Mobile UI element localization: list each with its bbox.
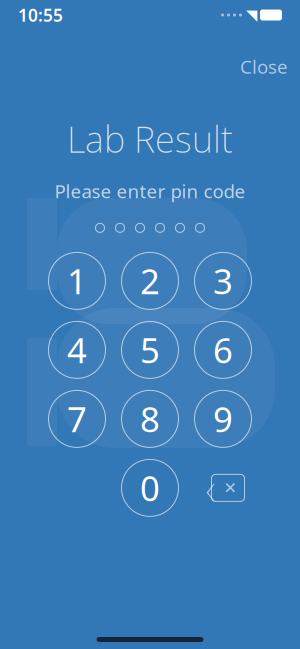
button[interactable]: 7 — [40, 384, 113, 453]
staticText: ‹ — [205, 458, 215, 518]
button[interactable]: 2 — [113, 246, 186, 315]
staticText: 10:55 — [18, 3, 63, 26]
button[interactable]: Delete — [186, 453, 259, 522]
staticText: 4 — [67, 327, 87, 373]
staticText: ◥ — [246, 7, 257, 23]
staticText: ✕ — [223, 479, 236, 497]
button[interactable]: 0 — [113, 453, 186, 522]
staticText: 3 — [213, 258, 233, 304]
staticText: 7 — [67, 396, 87, 442]
button[interactable]: 6 — [186, 315, 259, 384]
staticText: Lab Result — [67, 115, 233, 163]
button[interactable]: 3 — [186, 246, 259, 315]
staticText: 6 — [213, 327, 233, 373]
button[interactable]: Close — [234, 48, 294, 85]
staticText: Close — [240, 54, 288, 79]
staticText: 2 — [140, 258, 160, 304]
staticText: 0 — [140, 465, 160, 511]
staticText: 1 — [67, 258, 87, 304]
button[interactable]: 5 — [113, 315, 186, 384]
button[interactable]: 4 — [40, 315, 113, 384]
staticText: Please enter pin code — [54, 179, 245, 203]
button[interactable]: 9 — [186, 384, 259, 453]
staticText: 5 — [140, 327, 160, 373]
staticText: 8 — [140, 396, 160, 442]
button[interactable]: 8 — [113, 384, 186, 453]
staticText: 9 — [213, 396, 233, 442]
button[interactable]: 1 — [40, 246, 113, 315]
